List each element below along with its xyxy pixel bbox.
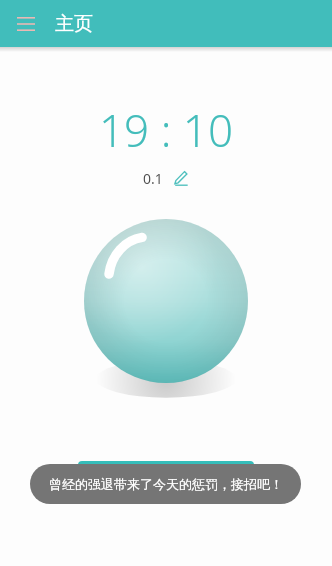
staticText: 0.1 (143, 169, 163, 188)
button[interactable]: Bubble (66, 210, 266, 400)
button[interactable]: 0.1 (143, 168, 190, 188)
button[interactable]: Menu (10, 8, 42, 40)
staticText: 主页 (55, 12, 93, 36)
button[interactable]: 确 定 (78, 461, 254, 499)
other: Edit (170, 168, 190, 188)
staticText: 确 定 (147, 470, 185, 490)
button[interactable]: 曾经的强退带来了今天的惩罚，接招吧！ (30, 464, 301, 504)
staticText: 19 : 10 (0, 100, 332, 160)
staticText: 曾经的强退带来了今天的惩罚，接招吧！ (49, 476, 283, 492)
